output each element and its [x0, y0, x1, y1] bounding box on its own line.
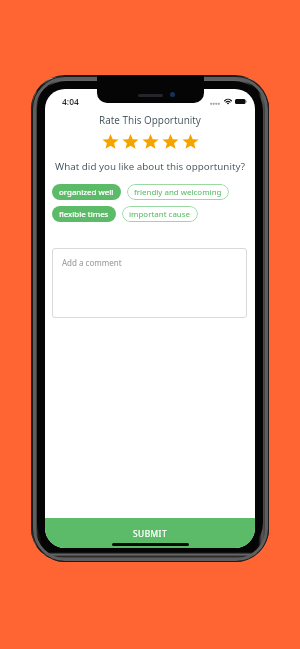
button[interactable]: Rate 3 stars [140, 134, 160, 149]
button[interactable]: organized well [52, 184, 121, 200]
staticText: Rate This Opportunity [45, 113, 255, 126]
staticText: friendly and welcoming [134, 187, 222, 198]
button[interactable]: SUBMIT [45, 518, 255, 548]
staticText: SUBMIT [133, 528, 168, 539]
button[interactable]: friendly and welcoming [127, 184, 229, 200]
staticText: Add a comment [62, 257, 122, 268]
button[interactable]: Rate 4 stars [160, 134, 180, 149]
button[interactable]: Rate 2 stars [120, 134, 140, 149]
staticText: important cause [129, 209, 191, 220]
staticText: 4:04 [62, 96, 79, 108]
staticText: What did you like about this opportunity… [45, 160, 255, 173]
button[interactable]: flexible times [52, 206, 116, 222]
staticText: organized well [59, 187, 114, 198]
button[interactable]: important cause [122, 206, 198, 222]
staticText: flexible times [59, 209, 109, 220]
button[interactable]: Add a comment [52, 248, 247, 318]
button[interactable]: Rate 1 stars [100, 134, 120, 149]
button[interactable]: Rate 5 stars [180, 134, 200, 149]
